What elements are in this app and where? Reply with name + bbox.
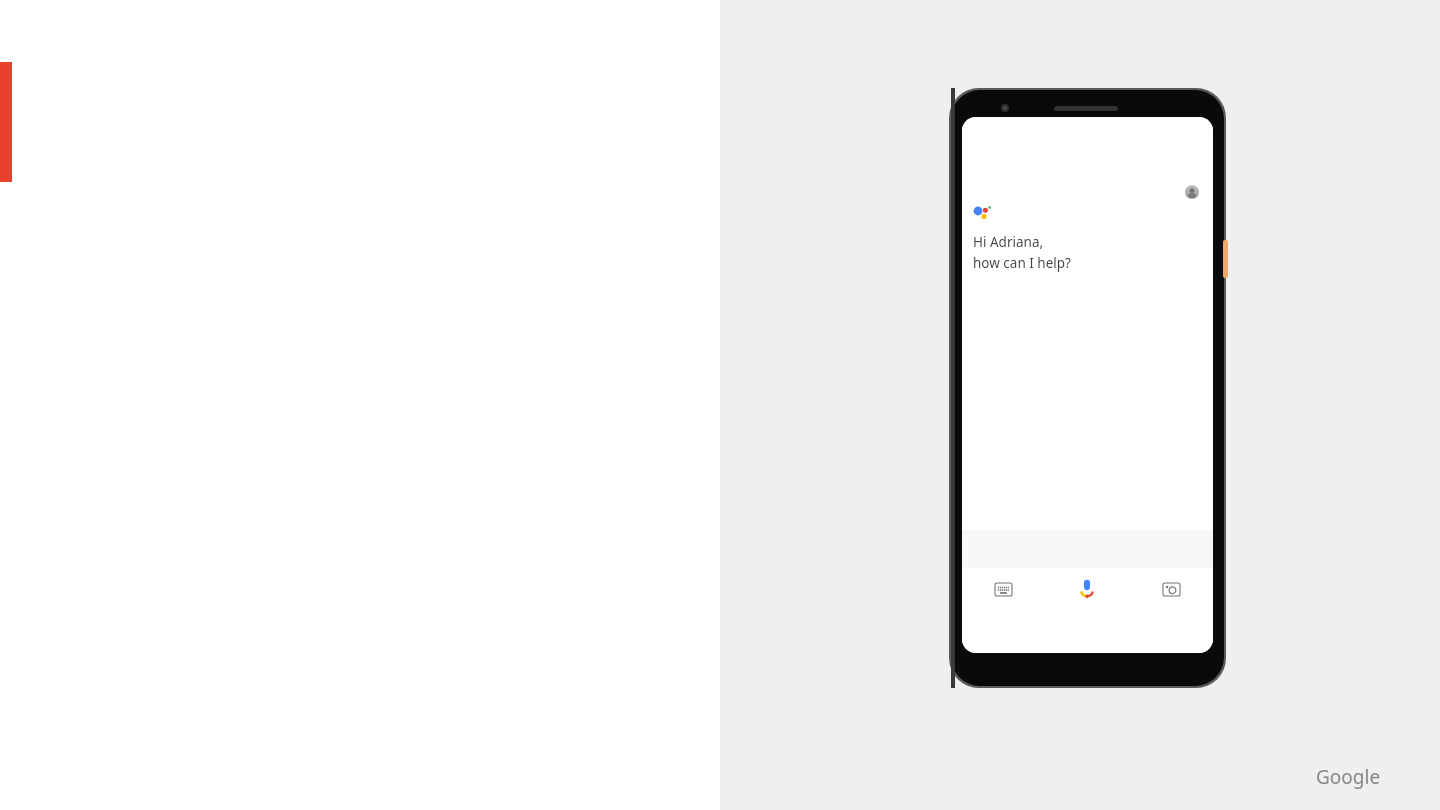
staticText: Google [1316, 764, 1381, 790]
button[interactable]: Keyboard [962, 568, 1045, 610]
staticText: how can I help? [973, 254, 1071, 272]
staticText: Hi Adriana, [973, 233, 1044, 251]
button[interactable]: Google Lens [1129, 568, 1213, 610]
button[interactable]: Microphone [1045, 568, 1129, 610]
button[interactable]: Account [1185, 185, 1199, 199]
